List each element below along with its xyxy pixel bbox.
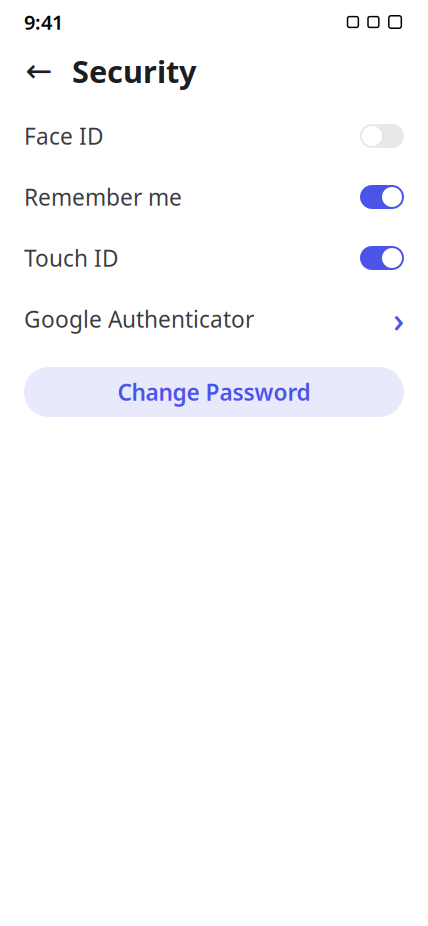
staticText: › bbox=[393, 296, 404, 342]
staticText: Google Authenticator bbox=[24, 304, 254, 334]
staticText: Face ID bbox=[24, 121, 104, 151]
staticText: Remember me bbox=[24, 182, 182, 212]
staticText: Security bbox=[72, 51, 197, 91]
staticText: Change Password bbox=[117, 377, 310, 407]
button[interactable]: Change Password bbox=[24, 367, 404, 417]
staticText: Touch ID bbox=[24, 243, 119, 273]
staticText: 9:41 bbox=[24, 9, 63, 35]
button[interactable]: Face ID bbox=[360, 124, 404, 148]
button[interactable]: Google Authenticator bbox=[24, 299, 404, 339]
staticText: ← bbox=[25, 53, 52, 89]
button[interactable]: Touch ID bbox=[360, 246, 404, 270]
button[interactable]: Remember me bbox=[360, 185, 404, 209]
button[interactable]: Back bbox=[24, 56, 54, 86]
